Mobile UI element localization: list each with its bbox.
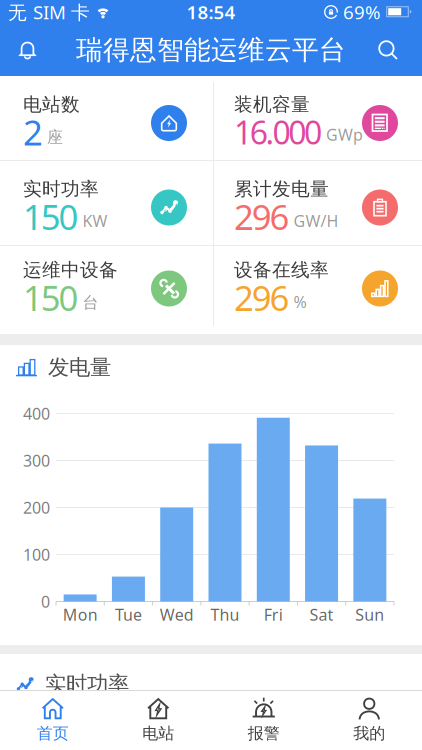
staticText: 首页 xyxy=(37,724,69,743)
staticText: 座 xyxy=(47,127,63,147)
button[interactable]: 电站 xyxy=(105,693,211,747)
staticText: 报警 xyxy=(248,724,280,743)
staticText: 150 xyxy=(23,274,79,320)
staticText: 200 xyxy=(23,497,50,518)
staticText: 300 xyxy=(23,450,50,471)
button[interactable]: 报警 xyxy=(211,693,316,747)
staticText: 18:54 xyxy=(186,0,235,24)
button[interactable]: 设备在线率 xyxy=(211,245,422,322)
button[interactable]: 运维中设备 xyxy=(0,245,211,322)
staticText: 16.000 xyxy=(234,111,322,153)
staticText: Mon xyxy=(63,604,98,625)
staticText: 装机容量 xyxy=(234,93,310,116)
staticText: 0 xyxy=(41,591,50,612)
staticText: % xyxy=(294,291,307,312)
staticText: Tue xyxy=(115,604,142,625)
button[interactable]: 搜索 xyxy=(377,39,422,61)
staticText: 瑞得恩智能运维云平台 xyxy=(76,34,346,66)
staticText: Sun xyxy=(355,604,384,625)
staticText: 实时功率 xyxy=(45,671,129,697)
button[interactable]: 首页 xyxy=(0,693,105,747)
staticText: KW xyxy=(83,210,108,231)
staticText: 电站 xyxy=(142,724,174,743)
staticText: 我的 xyxy=(353,724,385,743)
staticText: 电站数 xyxy=(23,93,80,116)
staticText: 296 xyxy=(234,193,290,239)
button[interactable]: 装机容量 xyxy=(211,76,422,160)
staticText: 100 xyxy=(23,544,50,565)
staticText: 发电量 xyxy=(48,354,111,381)
staticText: 运维中设备 xyxy=(23,258,118,281)
staticText: 台 xyxy=(83,293,99,313)
staticText: 150 xyxy=(23,193,79,239)
button[interactable]: 实时功率 xyxy=(0,160,211,245)
staticText: GWp xyxy=(326,124,363,145)
staticText: Fri xyxy=(264,604,283,625)
staticText: GW/H xyxy=(294,210,339,231)
staticText: 累计发电量 xyxy=(234,177,329,200)
staticText: 69% xyxy=(343,0,381,24)
button[interactable]: 我的 xyxy=(316,693,422,747)
staticText: 296 xyxy=(234,274,290,320)
button[interactable]: 电站数 xyxy=(0,76,211,160)
staticText: Thu xyxy=(210,604,239,625)
button[interactable]: 累计发电量 xyxy=(211,160,422,245)
button[interactable]: 通知 xyxy=(0,39,38,61)
staticText: 400 xyxy=(23,403,50,424)
staticText: 2 xyxy=(23,109,43,155)
staticText: 设备在线率 xyxy=(234,258,329,281)
staticText: 无 SIM 卡 xyxy=(8,0,90,24)
staticText: Wed xyxy=(160,604,194,625)
staticText: 实时功率 xyxy=(23,177,99,200)
staticText: Sat xyxy=(310,604,334,625)
